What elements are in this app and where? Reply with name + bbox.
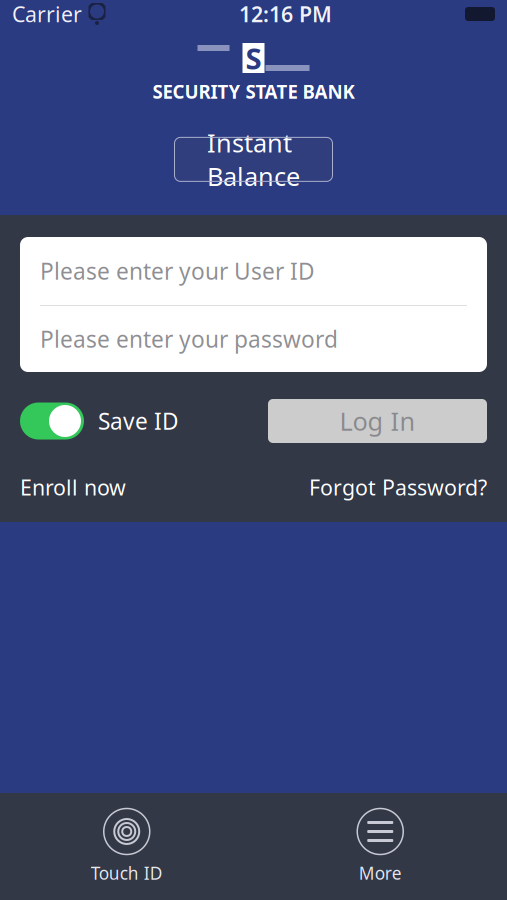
staticText: Instant Balance — [207, 126, 300, 193]
button[interactable]: Forgot Password? — [309, 473, 487, 501]
staticText: 12:16 PM — [239, 0, 332, 28]
button[interactable]: Enroll now — [20, 473, 126, 501]
staticText: Touch ID — [91, 861, 163, 884]
staticText: S — [245, 38, 261, 77]
staticText: Enroll now — [20, 473, 126, 501]
button[interactable]: Log In — [268, 399, 487, 443]
staticText: SECURITY STATE BANK — [152, 79, 354, 104]
staticText: Save ID — [98, 406, 179, 436]
staticText: Forgot Password? — [309, 473, 487, 501]
staticText: Please enter your password — [40, 324, 338, 354]
button[interactable]: Touch ID — [67, 808, 187, 884]
button[interactable]: More — [320, 808, 440, 884]
staticText: More — [359, 861, 402, 884]
staticText: Please enter your User ID — [40, 256, 315, 286]
button[interactable]: Instant Balance — [174, 137, 332, 181]
button[interactable]: Save ID — [20, 402, 179, 439]
staticText: Log In — [339, 404, 415, 438]
staticText: Carrier — [12, 0, 82, 28]
